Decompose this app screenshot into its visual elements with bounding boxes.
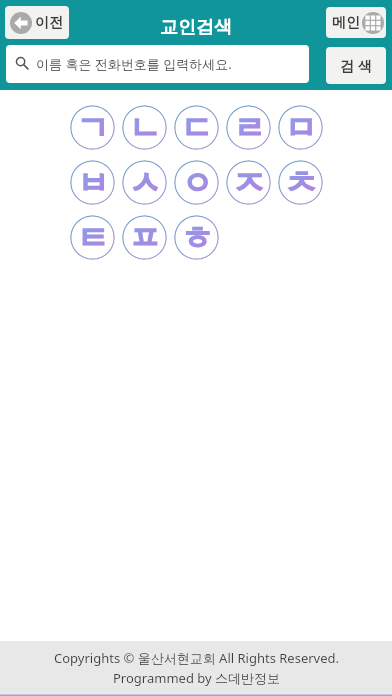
staticText: ㅌ bbox=[77, 218, 109, 258]
button[interactable]: ㄷ bbox=[174, 105, 219, 150]
button[interactable]: ㅊ bbox=[278, 160, 323, 205]
staticText: Programmed by 스데반정보 bbox=[113, 669, 280, 687]
staticText: ㅂ bbox=[77, 163, 109, 203]
button[interactable]: ㄹ bbox=[226, 105, 271, 150]
button[interactable]: ㅇ bbox=[174, 160, 219, 205]
button[interactable]: ㄱ bbox=[70, 105, 115, 150]
staticText: ㅍ bbox=[129, 218, 161, 258]
button[interactable]: ㅁ bbox=[278, 105, 323, 150]
staticText: ㄷ bbox=[181, 108, 213, 148]
button[interactable]: ㅌ bbox=[70, 215, 115, 260]
staticText: 검 색 bbox=[340, 56, 372, 75]
staticText: ㄱ bbox=[77, 108, 109, 148]
button[interactable]: ㄴ bbox=[122, 105, 167, 150]
staticText: ㅊ bbox=[285, 163, 317, 203]
button[interactable]: ㅂ bbox=[70, 160, 115, 205]
staticText: ㅎ bbox=[181, 218, 213, 258]
staticText: 이름 혹은 전화번호를 입력하세요. bbox=[36, 55, 232, 73]
staticText: ㅈ bbox=[233, 163, 265, 203]
staticText: Copyrights © 울산서현교회 All Rights Reserved. bbox=[54, 649, 339, 667]
staticText: ㅇ bbox=[181, 163, 213, 203]
staticText: ㅁ bbox=[285, 108, 317, 148]
staticText: 메인 bbox=[332, 14, 360, 32]
staticText: ㄹ bbox=[233, 108, 265, 148]
button[interactable]: ㅎ bbox=[174, 215, 219, 260]
staticText: 교인검색 bbox=[160, 16, 232, 39]
staticText: 이전 bbox=[35, 14, 63, 32]
staticText: ㅅ bbox=[129, 163, 161, 203]
button[interactable]: 검 색 bbox=[326, 47, 386, 84]
button[interactable]: ㅈ bbox=[226, 160, 271, 205]
button[interactable]: ㅅ bbox=[122, 160, 167, 205]
button[interactable]: ㅍ bbox=[122, 215, 167, 260]
staticText: ㄴ bbox=[129, 108, 161, 148]
button[interactable]: 이전 bbox=[5, 6, 69, 39]
button[interactable]: 메인 bbox=[326, 7, 386, 38]
button[interactable]: 이름 혹은 전화번호를 입력하세요. bbox=[6, 45, 309, 83]
